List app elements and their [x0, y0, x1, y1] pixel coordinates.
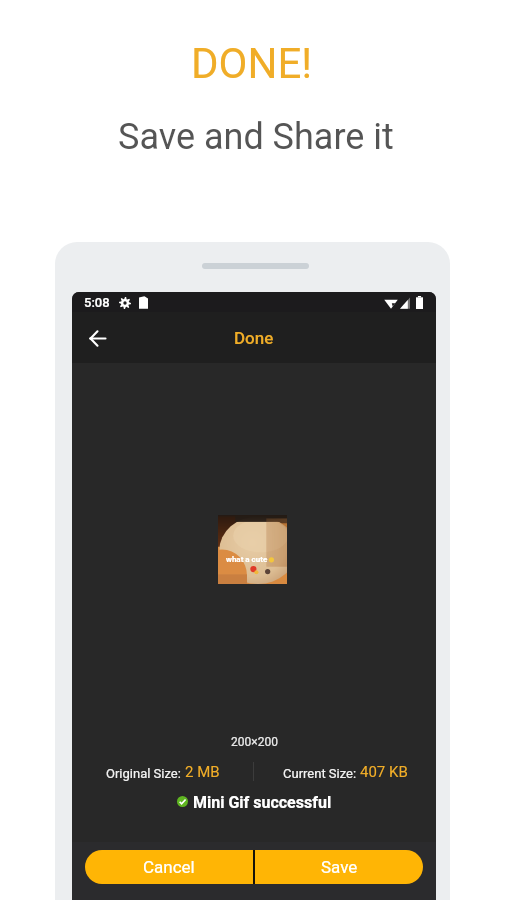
- button[interactable]: Gif preview: [218, 515, 287, 584]
- staticText: 2 MB: [185, 763, 220, 781]
- staticText: Original Size:: [106, 766, 185, 781]
- staticText: 407 KB: [360, 763, 408, 781]
- staticText: DONE!: [191, 39, 313, 88]
- staticText: Save: [321, 857, 358, 877]
- staticText: Save and Share it: [118, 116, 394, 158]
- staticText: what a cute: [226, 555, 268, 564]
- staticText: Mini Gif successful: [193, 793, 332, 809]
- button[interactable]: Save: [255, 850, 423, 884]
- staticText: Current Size:: [283, 766, 360, 781]
- button[interactable]: Back: [82, 323, 112, 353]
- staticText: 5:08: [84, 295, 110, 310]
- staticText: Done: [234, 328, 274, 348]
- button[interactable]: Cancel: [85, 850, 253, 884]
- staticText: 200×200: [231, 735, 278, 749]
- staticText: Cancel: [143, 857, 195, 877]
